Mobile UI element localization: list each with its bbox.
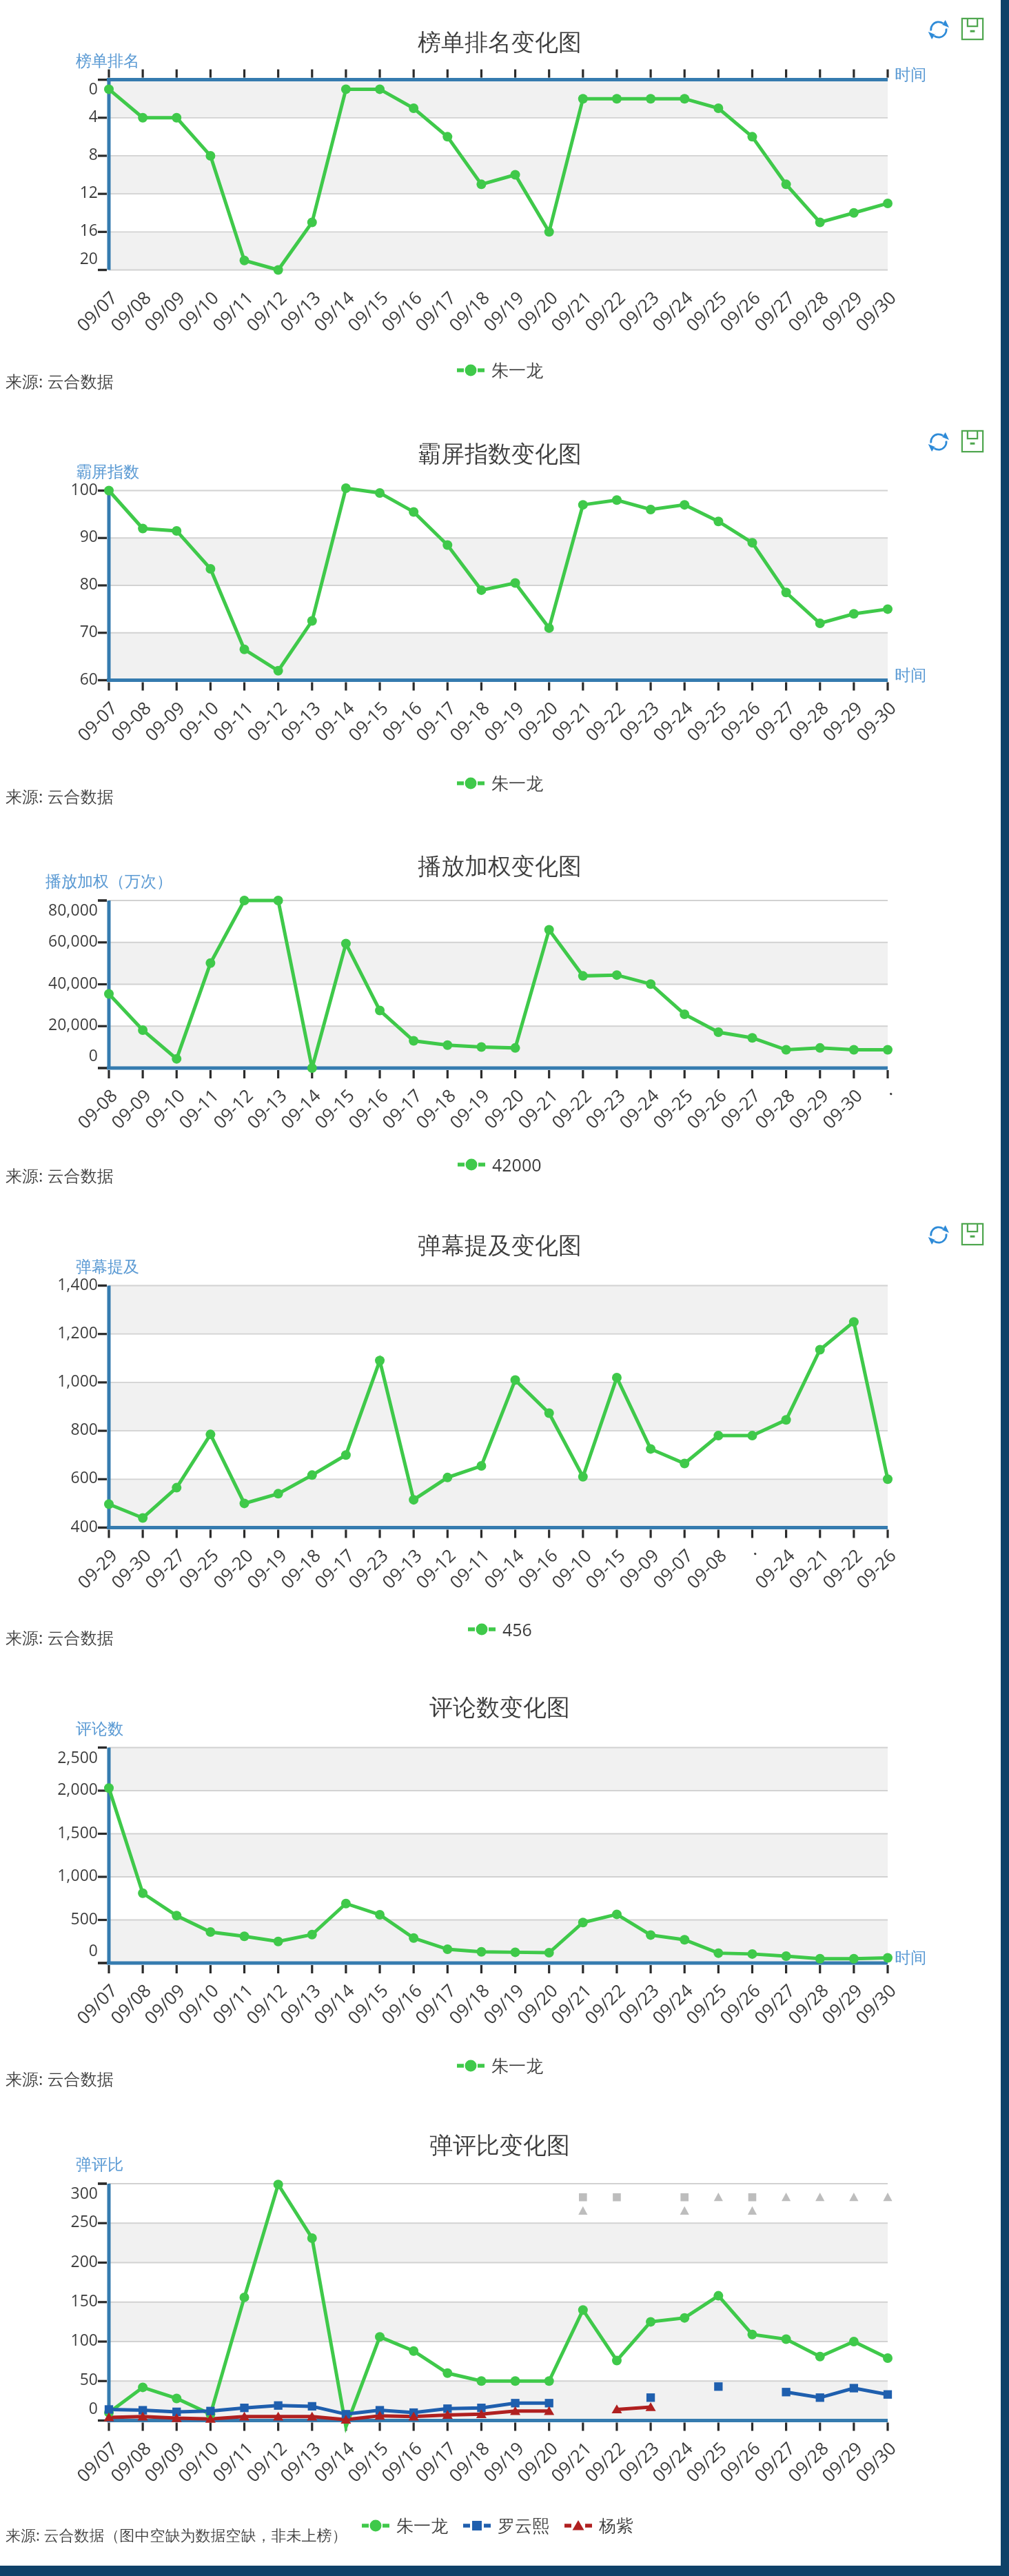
staticText: 弹评比变化图 — [0, 2131, 999, 2160]
staticText: 09-24 — [617, 696, 697, 776]
staticText: 霸屏指数变化图 — [0, 439, 999, 469]
staticText: 09/22 — [549, 1978, 630, 2059]
staticText: 20,000 — [0, 1013, 98, 1034]
staticText: 09/08 — [75, 285, 155, 366]
staticText: 09-22 — [515, 1083, 596, 1164]
staticText: 弹评比 — [76, 2155, 123, 2175]
button[interactable]: Save chart — [961, 1222, 984, 1246]
staticText: 16 — [0, 219, 98, 240]
staticText: 09/15 — [312, 2436, 393, 2516]
staticText: 09/28 — [753, 285, 833, 366]
staticText: 来源: 云合数据 — [6, 1626, 114, 1649]
staticText: 09-19 — [211, 1543, 291, 1624]
staticText: 80,000 — [0, 898, 98, 920]
staticText: 80 — [0, 572, 98, 594]
button[interactable]: 朱一龙 — [457, 768, 543, 798]
staticText: 09/16 — [346, 285, 426, 366]
staticText: 09-14 — [245, 1083, 325, 1164]
staticText: 09-18 — [380, 1083, 460, 1164]
staticText: 霸屏指数 — [76, 462, 139, 482]
button[interactable]: Refresh chart — [926, 1222, 952, 1248]
staticText: 250 — [0, 2210, 98, 2231]
staticText: 09-17 — [380, 696, 460, 776]
staticText: 09-27 — [109, 1543, 189, 1624]
button[interactable]: Save chart — [961, 430, 984, 453]
button[interactable]: 朱一龙 — [362, 2510, 448, 2541]
staticText: 09/15 — [312, 1978, 393, 2059]
staticText: 1,400 — [0, 1273, 98, 1294]
button[interactable]: 朱一龙 — [457, 2051, 543, 2081]
button[interactable]: 杨紫 — [564, 2510, 633, 2541]
staticText: 评论数 — [76, 1719, 123, 1739]
staticText: 09/11 — [177, 1978, 257, 2059]
staticText: 09-07 — [617, 1543, 697, 1624]
staticText: 朱一龙 — [396, 2515, 448, 2537]
staticText: 09-10 — [143, 696, 223, 776]
staticText: 09/07 — [41, 2436, 122, 2516]
staticText: 2,500 — [0, 1746, 98, 1767]
button[interactable]: 罗云熙 — [463, 2510, 549, 2541]
button[interactable]: 朱一龙 — [457, 355, 543, 385]
staticText: 09/14 — [278, 285, 359, 366]
staticText: 09/10 — [143, 2436, 223, 2516]
staticText: 09/19 — [448, 2436, 528, 2516]
staticText: 09-27 — [719, 696, 799, 776]
staticText: 500 — [0, 1907, 98, 1929]
staticText: 09/22 — [549, 285, 630, 366]
staticText: 09-08 — [651, 1543, 731, 1624]
staticText: 09/24 — [617, 2436, 697, 2516]
staticText: 09/16 — [346, 2436, 426, 2516]
staticText: 09/22 — [549, 2436, 630, 2516]
staticText: 09-19 — [448, 696, 528, 776]
staticText: 300 — [0, 2182, 98, 2203]
staticText: 09-21 — [753, 1543, 833, 1624]
staticText: 0 — [0, 1044, 98, 1065]
button[interactable]: 42000 — [458, 1149, 542, 1180]
staticText: 8 — [0, 143, 98, 164]
staticText: 评论数变化图 — [0, 1693, 999, 1722]
staticText: 09-25 — [651, 696, 731, 776]
staticText: 朱一龙 — [491, 773, 543, 794]
staticText: 09-23 — [312, 1543, 393, 1624]
staticText: 09-15 — [278, 1083, 359, 1164]
staticText: 09-10 — [515, 1543, 596, 1624]
staticText: 4 — [0, 105, 98, 126]
staticText: 时间 — [895, 1948, 926, 1968]
button[interactable]: Save chart — [961, 17, 984, 41]
staticText: 09-19 — [413, 1083, 494, 1164]
staticText: 09-09 — [583, 1543, 663, 1624]
staticText: 09/12 — [211, 1978, 291, 2059]
staticText: 09-11 — [177, 696, 257, 776]
staticText: 09-29 — [41, 1543, 122, 1624]
staticText: 2,000 — [0, 1778, 98, 1799]
staticText: 09/10 — [143, 1978, 223, 2059]
button[interactable]: Refresh chart — [926, 17, 952, 43]
staticText: 来源: 云合数据 — [6, 785, 114, 807]
staticText: 09-11 — [413, 1543, 494, 1624]
staticText: 09-08 — [41, 1083, 122, 1164]
staticText: 来源: 云合数据（图中空缺为数据空缺，非未上榜） — [6, 2524, 347, 2545]
staticText: 09-18 — [413, 696, 494, 776]
staticText: 09-24 — [583, 1083, 663, 1164]
staticText: 09-25 — [617, 1083, 697, 1164]
staticText: 60,000 — [0, 929, 98, 951]
staticText: 罗云熙 — [498, 2515, 549, 2537]
staticText: 1,000 — [0, 1369, 98, 1391]
staticText: 09/14 — [278, 1978, 359, 2059]
staticText: 09/13 — [245, 1978, 325, 2059]
staticText: 09/23 — [583, 2436, 663, 2516]
button[interactable]: 456 — [468, 1614, 532, 1644]
staticText: 09/27 — [719, 2436, 799, 2516]
staticText: 09/23 — [583, 1978, 663, 2059]
staticText: 09-11 — [143, 1083, 223, 1164]
staticText: 09-22 — [549, 696, 630, 776]
staticText: 0 — [0, 1939, 98, 1960]
staticText: 09/30 — [820, 1978, 901, 2059]
staticText: 09/08 — [75, 2436, 155, 2516]
button[interactable]: Refresh chart — [926, 429, 952, 455]
staticText: 09/23 — [583, 285, 663, 366]
staticText: 90 — [0, 525, 98, 546]
staticText: 09/20 — [482, 1978, 562, 2059]
staticText: 09-15 — [549, 1543, 630, 1624]
staticText: 来源: 云合数据 — [6, 2067, 114, 2090]
